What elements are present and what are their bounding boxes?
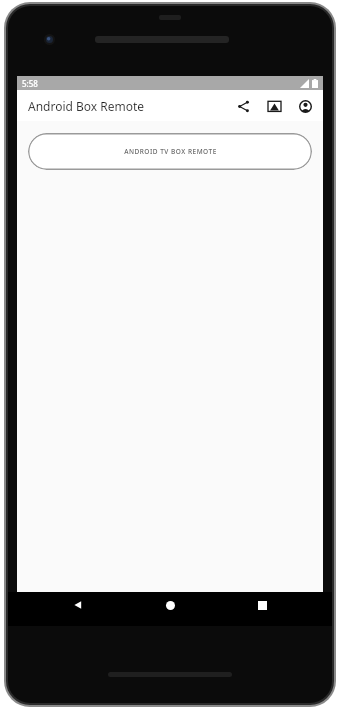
button[interactable]: ANDROID TV BOX REMOTE [28, 133, 312, 170]
staticText: Android Box Remote [28, 98, 145, 114]
button[interactable]: Cast [262, 94, 286, 118]
staticText: 5:58 [22, 78, 38, 89]
button[interactable]: Home [124, 592, 216, 618]
button[interactable]: Back [32, 592, 124, 618]
staticText: ANDROID TV BOX REMOTE [124, 147, 217, 156]
button[interactable]: Share [231, 94, 255, 118]
button[interactable]: Recent apps [216, 592, 308, 618]
button[interactable]: Account [293, 94, 317, 118]
